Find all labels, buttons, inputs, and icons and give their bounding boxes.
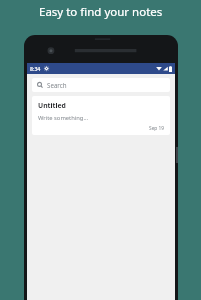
button[interactable]: Untitled (32, 96, 170, 135)
staticText: 8:34 (30, 65, 41, 72)
staticText: Untitled (38, 101, 66, 110)
staticText: Write something... (38, 114, 89, 122)
staticText: Search (47, 81, 67, 89)
staticText: Easy to find your notes (39, 4, 163, 20)
staticText: Sep 19 (149, 125, 165, 132)
button[interactable]: Search (32, 78, 170, 92)
